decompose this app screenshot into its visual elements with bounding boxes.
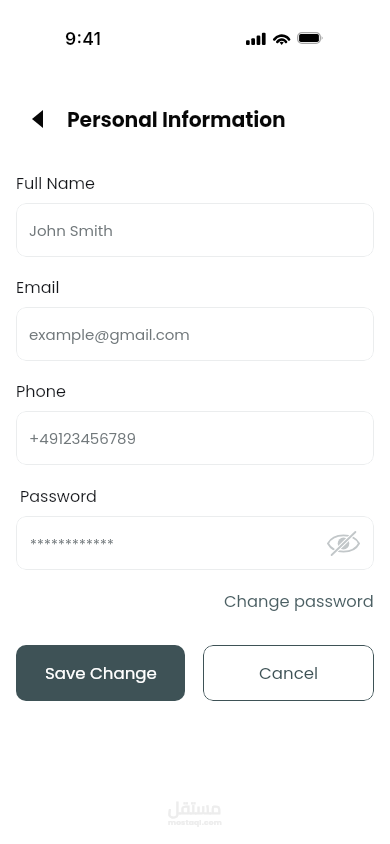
staticText: Full Name <box>16 172 95 194</box>
button[interactable]: Show password <box>324 524 362 562</box>
button[interactable]: +49123456789 <box>16 411 374 465</box>
staticText: Email <box>16 276 60 298</box>
button[interactable]: John Smith <box>16 203 374 257</box>
staticText: ************ <box>30 535 115 555</box>
button[interactable]: Change password <box>220 586 378 617</box>
staticText: John Smith <box>29 220 113 241</box>
staticText: 9:41 <box>65 28 102 49</box>
staticText: Change password <box>224 590 374 613</box>
staticText: +49123456789 <box>29 428 136 449</box>
staticText: Personal Information <box>67 106 286 134</box>
staticText: example@gmail.com <box>29 324 190 345</box>
staticText: mostaql.com <box>168 817 222 827</box>
staticText: Cancel <box>259 662 319 685</box>
button[interactable]: example@gmail.com <box>16 307 374 361</box>
button[interactable]: Save Change <box>16 645 185 701</box>
button[interactable]: ************ <box>16 516 374 570</box>
staticText: Phone <box>16 380 66 402</box>
staticText: Password <box>20 485 97 507</box>
staticText: مستقل <box>168 792 222 824</box>
button[interactable]: Back <box>22 99 52 139</box>
button[interactable]: Cancel <box>203 645 374 701</box>
staticText: Save Change <box>45 662 157 685</box>
